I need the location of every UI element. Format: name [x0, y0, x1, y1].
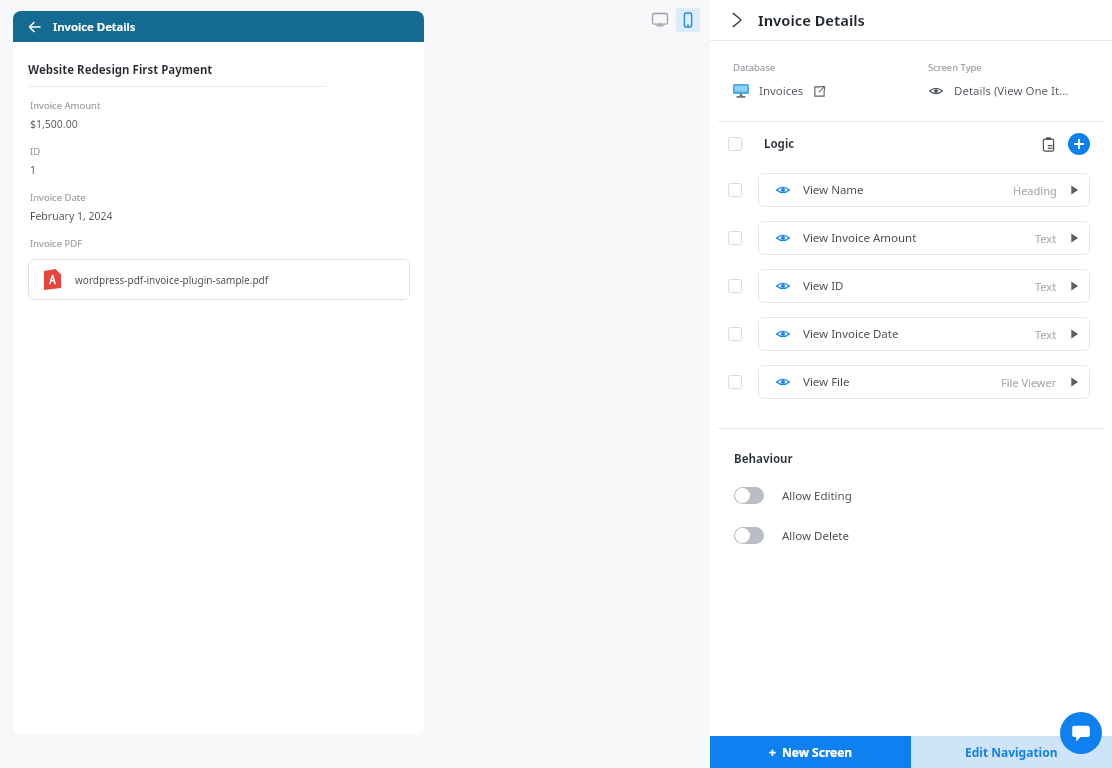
staticText: Text — [1035, 231, 1057, 246]
button[interactable]: + — [710, 736, 911, 768]
staticText: Heading — [1013, 183, 1057, 198]
button[interactable]: View Invoice Amount — [758, 221, 1090, 255]
button[interactable]: Mobile preview — [676, 8, 700, 32]
staticText: Invoice Date — [30, 191, 86, 204]
button[interactable]: Invoices — [733, 83, 825, 99]
staticText: + — [769, 744, 776, 760]
staticText: wordpress-pdf-invoice-plugin-sample.pdf — [75, 273, 269, 287]
button[interactable]: Back — [13, 11, 424, 42]
button[interactable]: View File — [758, 365, 1090, 399]
staticText: Invoices — [759, 83, 804, 99]
button[interactable]: Select — [728, 279, 742, 293]
button[interactable]: View ID — [758, 269, 1090, 303]
staticText: Text — [1035, 279, 1057, 294]
button[interactable]: Edit Navigation — [911, 736, 1112, 768]
staticText: Logic — [764, 136, 795, 152]
button[interactable]: View Invoice Date — [758, 317, 1090, 351]
staticText: Invoice Details — [758, 10, 865, 30]
button[interactable]: Allow Delete — [734, 527, 858, 544]
staticText: Behaviour — [734, 451, 793, 467]
staticText: Allow Editing — [782, 488, 852, 504]
staticText: Text — [1035, 327, 1057, 342]
staticText: $1,500.00 — [30, 117, 78, 131]
staticText: File Viewer — [1001, 375, 1057, 390]
staticText: Invoice Amount — [30, 99, 101, 112]
button[interactable]: Desktop preview — [648, 8, 672, 32]
button[interactable]: Select — [728, 183, 742, 197]
staticText: Edit Navigation — [965, 744, 1058, 760]
button[interactable]: Select — [728, 375, 742, 389]
staticText: Details (View One It… — [954, 83, 1069, 99]
button[interactable]: wordpress-pdf-invoice-plugin-sample.pdf — [28, 259, 410, 300]
staticText: 1 — [30, 163, 37, 177]
button[interactable]: Select — [728, 327, 742, 341]
button[interactable]: Select — [728, 231, 742, 245]
button[interactable]: Back — [726, 9, 748, 31]
staticText: View Name — [803, 182, 864, 198]
staticText: Database — [733, 61, 776, 74]
button[interactable]: Back — [25, 17, 45, 37]
staticText: Screen Type — [928, 61, 982, 74]
staticText: Invoice PDF — [30, 237, 83, 250]
staticText: ID — [30, 145, 41, 158]
staticText: New Screen — [782, 744, 853, 760]
staticText: View Invoice Date — [803, 326, 899, 342]
staticText: Invoice Details — [53, 19, 136, 35]
button[interactable]: View Name — [758, 173, 1090, 207]
staticText: Website Redesign First Payment — [28, 62, 213, 78]
button[interactable]: Open chat — [1060, 712, 1102, 754]
button[interactable]: Paste — [1036, 132, 1060, 156]
button[interactable]: Add component — [1068, 133, 1090, 155]
button[interactable]: Allow Editing — [734, 487, 860, 504]
button[interactable]: Select — [728, 137, 742, 151]
staticText: View Invoice Amount — [803, 230, 917, 246]
staticText: Allow Delete — [782, 528, 850, 544]
staticText: February 1, 2024 — [30, 209, 113, 223]
staticText: View ID — [803, 278, 844, 294]
staticText: View File — [803, 374, 850, 390]
